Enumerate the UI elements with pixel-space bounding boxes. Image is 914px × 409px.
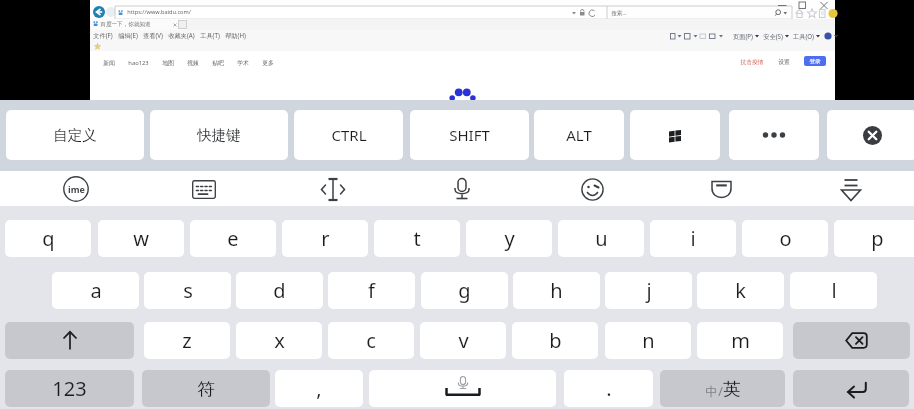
button[interactable]: ALT xyxy=(534,110,624,160)
button[interactable]: k xyxy=(697,272,784,309)
button[interactable]: i xyxy=(650,220,736,257)
staticText: u xyxy=(595,225,608,252)
button[interactable]: 符 xyxy=(142,370,270,407)
staticText: s xyxy=(183,277,193,304)
button[interactable]: Keyboard layout xyxy=(184,174,224,204)
staticText: b xyxy=(549,327,562,354)
staticText: 搜索... xyxy=(611,9,627,17)
button[interactable]: Input method xyxy=(56,174,96,204)
staticText: 收藏夹(A) xyxy=(168,31,195,39)
button[interactable]: Voice input xyxy=(442,174,482,204)
staticText: f xyxy=(368,277,375,304)
staticText: x xyxy=(274,327,285,354)
button[interactable]: Windows key xyxy=(630,110,720,160)
button[interactable]: o xyxy=(742,220,828,257)
staticText: e xyxy=(227,225,239,252)
button[interactable]: Enter xyxy=(793,370,909,407)
button[interactable]: 快捷键 xyxy=(150,110,288,160)
button[interactable]: h xyxy=(513,272,600,309)
button[interactable]: s xyxy=(144,272,231,309)
button[interactable]: a xyxy=(52,272,139,309)
staticText: i xyxy=(690,225,696,252)
button[interactable]: 123 xyxy=(5,370,134,407)
staticText: j xyxy=(646,277,652,304)
staticText: m xyxy=(731,327,750,354)
staticText: hao123 xyxy=(128,59,149,67)
button[interactable]: Emoji xyxy=(572,174,612,204)
staticText: 抗击疫情 xyxy=(740,58,764,65)
staticText: ALT xyxy=(566,125,592,145)
staticText: 符 xyxy=(197,378,215,400)
staticText: 百度一下，你就知道 xyxy=(100,21,151,28)
button[interactable]: l xyxy=(790,272,877,309)
button[interactable]: 自定义 xyxy=(6,110,144,160)
staticText: / xyxy=(718,383,723,400)
button[interactable]: Backspace xyxy=(793,322,910,359)
button[interactable]: g xyxy=(421,272,508,309)
staticText: g xyxy=(458,277,471,304)
button[interactable]: , xyxy=(275,370,363,407)
staticText: a xyxy=(90,277,102,304)
staticText: 安全(S) xyxy=(763,32,783,40)
button[interactable]: Space xyxy=(369,370,556,407)
staticText: 工具(O) xyxy=(793,32,814,40)
staticText: w xyxy=(133,225,149,252)
button[interactable]: n xyxy=(605,322,691,359)
button[interactable]: v xyxy=(420,322,506,359)
staticText: q xyxy=(42,225,55,252)
button[interactable]: m xyxy=(697,322,783,359)
button[interactable]: c xyxy=(328,322,414,359)
staticText: 快捷键 xyxy=(197,126,241,144)
button[interactable]: t xyxy=(374,220,460,257)
button[interactable]: CTRL xyxy=(294,110,403,160)
staticText: 学术 xyxy=(237,59,249,66)
staticText: 英 xyxy=(723,378,741,400)
staticText: 帮助(H) xyxy=(225,31,246,39)
button[interactable]: SHIFT xyxy=(410,110,529,160)
button[interactable]: p xyxy=(834,220,914,257)
staticText: 新闻 xyxy=(103,59,115,66)
button[interactable]: b xyxy=(512,322,598,359)
button[interactable]: 登录 xyxy=(804,56,826,66)
staticText: , xyxy=(316,375,322,402)
button[interactable]: j xyxy=(605,272,692,309)
button[interactable]: Hide keyboard xyxy=(831,174,871,204)
staticText: 自定义 xyxy=(53,126,97,144)
staticText: https://www.baidu.com/ xyxy=(127,8,191,16)
staticText: y xyxy=(504,225,515,252)
staticText: 123 xyxy=(52,375,87,402)
button[interactable]: Move cursor xyxy=(313,174,353,204)
staticText: h xyxy=(550,277,563,304)
button[interactable]: q xyxy=(5,220,91,257)
staticText: v xyxy=(458,327,469,354)
button[interactable]: u xyxy=(558,220,644,257)
staticText: 工具(T) xyxy=(200,31,220,39)
button[interactable]: z xyxy=(144,322,230,359)
staticText: 编辑(E) xyxy=(118,31,138,39)
staticText: c xyxy=(366,327,376,354)
button[interactable]: r xyxy=(282,220,368,257)
button[interactable]: Chinese English toggle xyxy=(660,370,785,407)
button[interactable]: w xyxy=(98,220,184,257)
staticText: k xyxy=(735,277,746,304)
staticText: 文件(F) xyxy=(93,31,113,39)
button[interactable]: x xyxy=(236,322,322,359)
staticText: SHIFT xyxy=(449,125,490,145)
button[interactable]: f xyxy=(328,272,415,309)
staticText: t xyxy=(413,225,421,252)
staticText: l xyxy=(831,277,837,304)
button[interactable]: Close xyxy=(827,110,914,160)
staticText: z xyxy=(182,327,192,354)
button[interactable]: Shift xyxy=(5,322,134,359)
button[interactable]: y xyxy=(466,220,552,257)
staticText: 查看(V) xyxy=(143,31,163,39)
button[interactable]: . xyxy=(564,370,653,407)
staticText: n xyxy=(642,327,655,354)
staticText: 视频 xyxy=(187,59,199,66)
staticText: d xyxy=(273,277,286,304)
button[interactable]: d xyxy=(236,272,323,309)
staticText: 贴吧 xyxy=(212,59,224,66)
button[interactable]: More xyxy=(729,110,819,160)
button[interactable]: Clipboard xyxy=(701,174,741,204)
button[interactable]: e xyxy=(190,220,276,257)
